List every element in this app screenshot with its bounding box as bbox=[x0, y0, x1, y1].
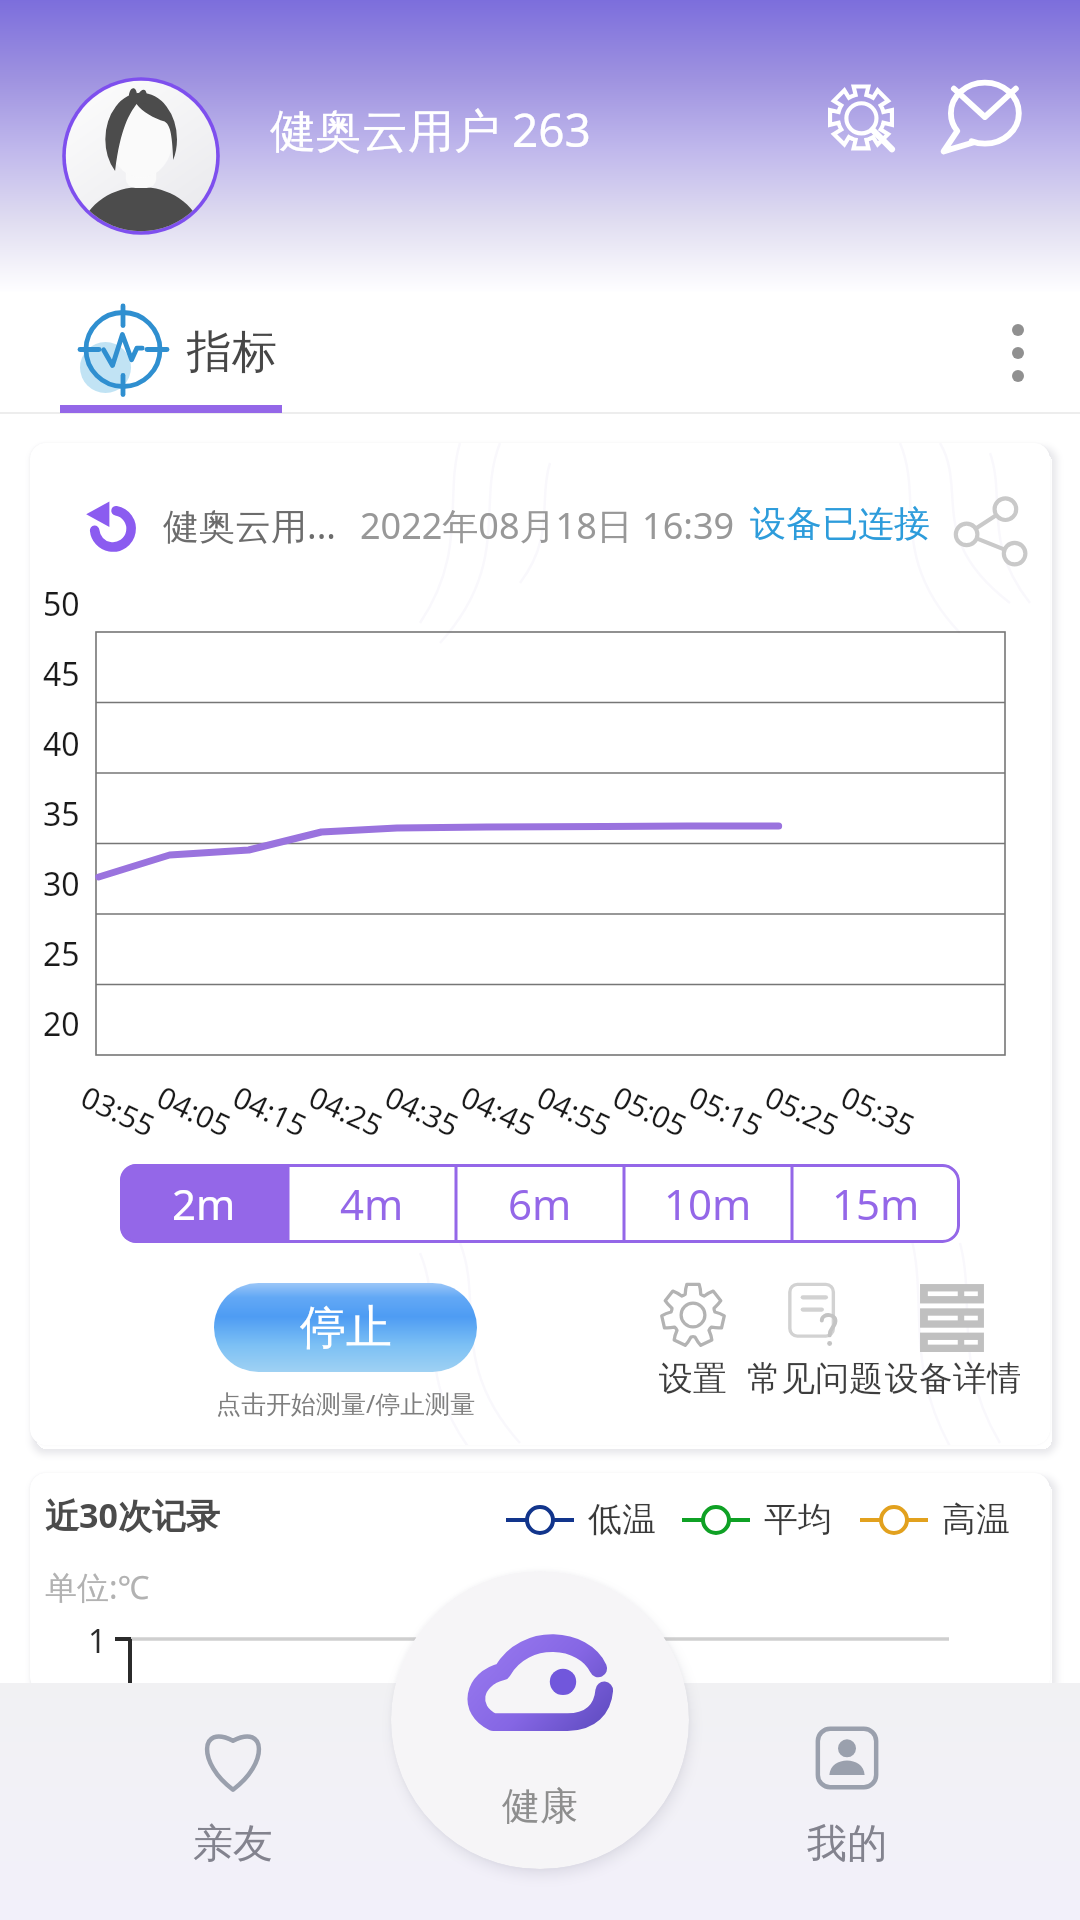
button[interactable]: 常见问题 bbox=[735, 1281, 895, 1400]
staticText: 点击开始测量/停止测量 bbox=[216, 1386, 476, 1420]
staticText: 04:05 bbox=[151, 1076, 238, 1146]
staticText: 40 bbox=[43, 722, 80, 766]
staticText: 设备详情 bbox=[885, 1357, 1021, 1400]
staticText: 近30次记录 bbox=[45, 1492, 220, 1538]
staticText: 设置 bbox=[659, 1357, 727, 1400]
button[interactable]: Settings bbox=[818, 74, 904, 160]
staticText: 单位:℃ bbox=[45, 1565, 150, 1609]
staticText: 设备已连接 bbox=[750, 501, 930, 546]
staticText: 25 bbox=[43, 932, 80, 976]
staticText: 15m bbox=[832, 1175, 920, 1232]
button[interactable]: 设置 bbox=[613, 1281, 773, 1400]
button[interactable]: 停止 bbox=[214, 1283, 477, 1372]
staticText: 健奥云用... bbox=[163, 501, 336, 550]
staticText: 2022年08月18日 16:39 bbox=[360, 501, 735, 550]
button[interactable]: 设备详情 bbox=[873, 1281, 1033, 1400]
staticText: 04:25 bbox=[303, 1076, 390, 1146]
button[interactable]: Share bbox=[945, 488, 1025, 568]
staticText: 指标 bbox=[187, 324, 277, 381]
staticText: 35 bbox=[43, 792, 80, 836]
staticText: 2m bbox=[172, 1175, 236, 1232]
staticText: 04:35 bbox=[379, 1076, 466, 1146]
staticText: 05:15 bbox=[683, 1076, 770, 1146]
button[interactable]: 健康 bbox=[391, 1571, 689, 1869]
staticText: 停止 bbox=[300, 1299, 392, 1357]
staticText: 50 bbox=[43, 582, 80, 626]
staticText: 05:25 bbox=[759, 1076, 846, 1146]
button[interactable]: 亲友 bbox=[153, 1722, 313, 1868]
staticText: 亲友 bbox=[193, 1818, 273, 1868]
button[interactable]: 2m bbox=[120, 1164, 288, 1243]
staticText: 10m bbox=[664, 1175, 752, 1232]
staticText: 20 bbox=[43, 1002, 80, 1046]
staticText: 04:15 bbox=[227, 1076, 314, 1146]
staticText: 30 bbox=[43, 862, 80, 906]
button[interactable]: More options bbox=[975, 310, 1061, 396]
staticText: 04:55 bbox=[531, 1076, 618, 1146]
staticText: 6m bbox=[508, 1175, 572, 1232]
staticText: 低温 bbox=[588, 1498, 656, 1541]
button[interactable]: 指标 bbox=[75, 302, 277, 402]
button[interactable]: 4m bbox=[288, 1164, 456, 1243]
staticText: 健康 bbox=[502, 1782, 578, 1830]
staticText: 4m bbox=[340, 1175, 404, 1232]
button[interactable]: 6m bbox=[456, 1164, 624, 1243]
staticText: 1 bbox=[88, 1619, 107, 1663]
staticText: 45 bbox=[43, 652, 80, 696]
staticText: 平均 bbox=[764, 1498, 832, 1541]
button[interactable]: Messages bbox=[938, 74, 1024, 160]
staticText: 健奥云用户 263 bbox=[270, 98, 591, 161]
staticText: 03:55 bbox=[75, 1076, 162, 1146]
staticText: 05:05 bbox=[607, 1076, 694, 1146]
button[interactable]: 10m bbox=[624, 1164, 792, 1243]
staticText: 高温 bbox=[942, 1498, 1010, 1541]
staticText: 05:35 bbox=[835, 1076, 922, 1146]
staticText: 常见问题 bbox=[747, 1357, 883, 1400]
button[interactable]: 我的 bbox=[767, 1722, 927, 1868]
button[interactable]: 15m bbox=[792, 1164, 960, 1243]
staticText: 我的 bbox=[807, 1818, 887, 1868]
staticText: 04:45 bbox=[455, 1076, 542, 1146]
